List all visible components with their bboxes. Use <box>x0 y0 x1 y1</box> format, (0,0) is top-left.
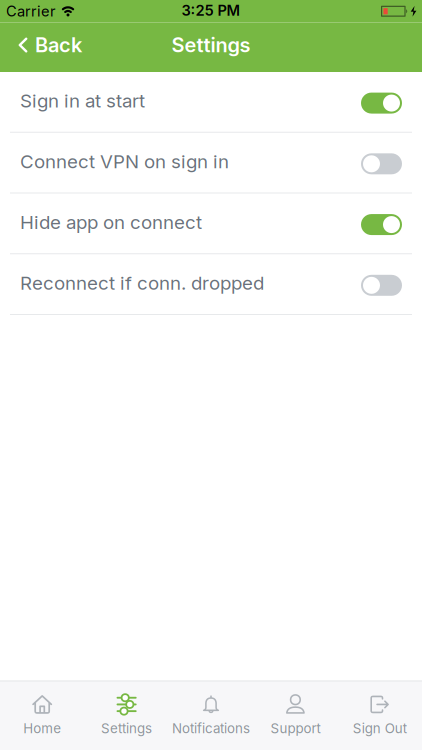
staticText: Carrier <box>6 3 56 20</box>
staticText: Settings <box>171 33 250 57</box>
staticText: Home <box>23 720 61 736</box>
staticText: Reconnect if conn. dropped <box>20 272 264 294</box>
staticText: Sign Out <box>353 720 407 736</box>
button[interactable]: On <box>361 214 402 235</box>
button[interactable]: Off <box>361 275 402 296</box>
staticText: Back <box>35 33 82 57</box>
staticText: Connect VPN on sign in <box>20 150 229 172</box>
staticText: Hide app on connect <box>20 211 202 233</box>
staticText: 3:25 PM <box>181 2 240 19</box>
button[interactable]: Back <box>0 27 82 63</box>
button[interactable]: Support <box>253 683 338 748</box>
button[interactable]: On <box>361 93 402 114</box>
button[interactable]: Off <box>361 153 402 174</box>
button[interactable]: Settings <box>84 683 169 748</box>
staticText: Support <box>270 720 320 736</box>
button[interactable]: Sign Out <box>338 683 422 748</box>
staticText: Sign in at start <box>20 90 145 112</box>
staticText: Notifications <box>172 720 250 736</box>
button[interactable]: Home <box>0 683 84 748</box>
staticText: Settings <box>101 720 152 736</box>
button[interactable]: Notifications <box>169 683 253 748</box>
